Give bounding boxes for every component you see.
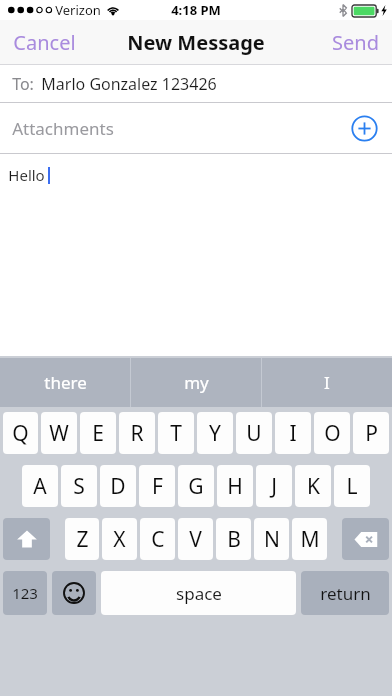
staticText: Verizon [55,1,101,19]
staticText: V [189,525,202,554]
button[interactable]: Add attachment [351,115,378,142]
button[interactable]: H [217,465,253,507]
button[interactable]: L [334,465,370,507]
button[interactable]: there [0,358,130,407]
button[interactable]: Attachments [0,103,392,153]
button[interactable]: Emoji keyboard [52,571,96,615]
staticText: I [324,371,330,394]
staticText: E [92,419,104,448]
staticText: P [365,419,378,448]
button[interactable]: Send [319,20,392,64]
button[interactable]: space [101,571,296,615]
staticText: 123 [12,583,38,603]
staticText: F [152,472,163,501]
button[interactable]: my [131,358,261,407]
button[interactable]: M [292,518,327,560]
staticText: J [271,472,277,501]
button[interactable]: P [353,412,389,454]
staticText: Y [209,419,221,448]
staticText: N [264,525,280,554]
staticText: L [346,472,358,501]
staticText: Q [12,419,29,448]
button[interactable]: Y [197,412,233,454]
button[interactable]: Q [3,412,38,454]
staticText: Cancel [13,29,76,56]
button[interactable]: 123 [3,571,47,615]
button[interactable]: W [41,412,77,454]
button[interactable]: S [61,465,97,507]
button[interactable]: Backspace [342,518,389,560]
button[interactable]: To: [0,65,392,102]
staticText: D [110,472,126,501]
button[interactable]: A [22,465,58,507]
staticText: Attachments [12,117,114,140]
button[interactable]: Cancel [0,20,89,64]
button[interactable]: V [178,518,213,560]
button[interactable]: Hello [0,154,392,356]
staticText: M [300,525,320,554]
staticText: K [307,472,320,501]
staticText: O [324,419,341,448]
button[interactable]: B [216,518,251,560]
button[interactable]: U [236,412,272,454]
button[interactable]: D [100,465,136,507]
staticText: R [130,419,144,448]
staticText: C [151,525,165,554]
button[interactable]: T [158,412,194,454]
button[interactable]: I [262,358,392,407]
staticText: Send [332,29,379,56]
staticText: U [246,419,262,448]
staticText: H [227,472,243,501]
button[interactable]: E [80,412,116,454]
button[interactable]: G [178,465,214,507]
staticText: X [113,525,126,554]
button[interactable]: return [301,571,389,615]
staticText: W [49,419,69,448]
button[interactable]: R [119,412,155,454]
button[interactable]: Shift [3,518,50,560]
button[interactable]: O [314,412,350,454]
button[interactable]: J [256,465,292,507]
button[interactable]: Z [65,518,99,560]
staticText: space [176,582,222,605]
button[interactable]: F [139,465,175,507]
button[interactable]: C [140,518,175,560]
button[interactable]: I [275,412,311,454]
staticText: I [289,419,297,448]
staticText: G [188,472,204,501]
button[interactable]: N [254,518,289,560]
staticText: B [227,525,241,554]
staticText: 4:18 PM [171,1,221,19]
button[interactable]: K [295,465,331,507]
staticText: T [170,419,182,448]
staticText: there [44,371,87,394]
staticText: To: [12,73,34,95]
staticText: A [33,472,47,501]
staticText: S [73,472,85,501]
staticText: my [184,371,209,394]
staticText: New Message [127,29,265,56]
staticText: Z [76,525,89,554]
staticText: return [320,582,371,605]
staticText: Hello [8,165,45,185]
staticText: Marlo Gonzalez 123426 [41,73,217,95]
button[interactable]: X [102,518,137,560]
